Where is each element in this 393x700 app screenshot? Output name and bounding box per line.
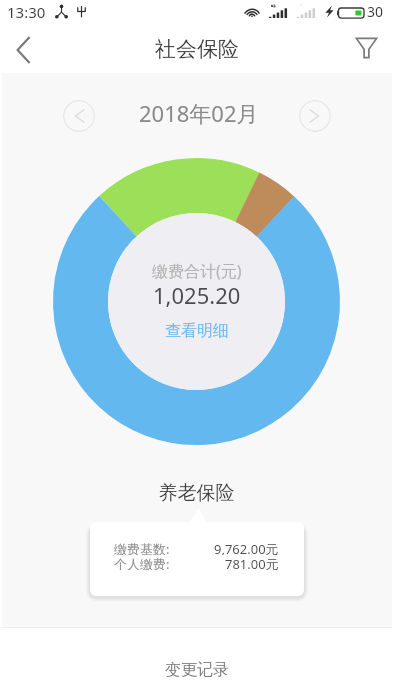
- staticText: 个人缴费:: [114, 555, 170, 570]
- staticText: 9,762.00元: [214, 540, 279, 555]
- staticText: 查看明细: [165, 321, 229, 341]
- staticText: 781.00元: [225, 555, 279, 570]
- button[interactable]: Next month: [299, 100, 331, 132]
- staticText: 13:30: [7, 2, 46, 22]
- button[interactable]: 变更记录: [0, 628, 393, 700]
- staticText: 2018年02月: [139, 98, 259, 128]
- button[interactable]: Previous month: [63, 100, 95, 132]
- staticText: 养老保险: [0, 481, 393, 505]
- staticText: 1,025.20: [153, 280, 241, 310]
- button[interactable]: 查看明细: [165, 321, 229, 341]
- staticText: 变更记录: [165, 660, 229, 680]
- button[interactable]: Back: [0, 26, 48, 73]
- staticText: 社会保险: [155, 36, 239, 62]
- staticText: 30: [367, 2, 384, 21]
- staticText: 缴费基数:: [114, 540, 170, 555]
- staticText: 缴费合计(元): [152, 260, 242, 282]
- button[interactable]: Filter: [343, 26, 393, 73]
